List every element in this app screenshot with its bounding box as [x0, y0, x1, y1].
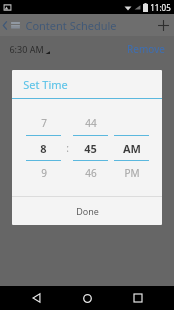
button[interactable]: Home [72, 286, 102, 310]
button[interactable]: Remove [118, 38, 174, 60]
staticText: 6:30 AM [9, 43, 44, 55]
button[interactable]: Done [12, 197, 162, 225]
staticText: Set Time [23, 77, 68, 92]
button[interactable]: 6:30 AM [9, 43, 50, 55]
staticText: 11:05 [150, 2, 171, 13]
button[interactable]: 7 [26, 111, 61, 135]
button[interactable]: 46 [73, 161, 108, 185]
button[interactable]: AM [114, 136, 149, 160]
button[interactable]: 9 [26, 161, 61, 185]
button[interactable]: Recent apps [123, 286, 153, 310]
staticText: AM [123, 141, 141, 156]
staticText: : [66, 141, 69, 155]
button[interactable]: Add [152, 14, 174, 36]
button[interactable]: 44 [73, 111, 108, 135]
button[interactable]: 45 [73, 136, 108, 160]
button[interactable]: Back [21, 286, 51, 310]
staticText: 44 [85, 116, 97, 130]
staticText: 45 [84, 141, 97, 156]
staticText: 46 [85, 166, 97, 180]
staticText: Content Schedule [25, 18, 117, 33]
staticText: 8 [40, 141, 47, 156]
staticText: 9 [41, 166, 47, 180]
staticText: Remove [127, 42, 165, 56]
button[interactable]: PM [114, 161, 149, 185]
button[interactable]: Back [0, 14, 25, 36]
staticText: Done [76, 205, 99, 217]
staticText: 7 [41, 116, 47, 130]
staticText: PM [124, 166, 140, 180]
button[interactable]: 8 [26, 136, 61, 160]
